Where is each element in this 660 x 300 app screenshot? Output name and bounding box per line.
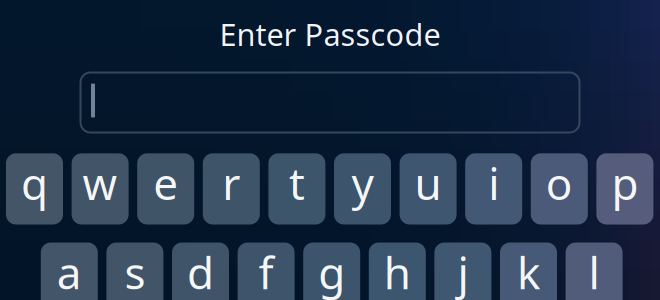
button[interactable]: r (203, 153, 260, 224)
button[interactable]: o (531, 153, 588, 224)
staticText: a (57, 243, 82, 300)
button[interactable]: a (41, 242, 98, 300)
staticText: l (589, 243, 600, 300)
staticText: w (83, 154, 118, 212)
button[interactable]: s (106, 242, 163, 300)
button[interactable]: h (369, 242, 426, 300)
button[interactable]: w (72, 153, 129, 224)
staticText: y (351, 154, 373, 212)
button[interactable]: t (268, 153, 325, 224)
staticText: o (546, 154, 573, 212)
button[interactable]: g (303, 242, 360, 300)
button[interactable]: p (596, 153, 653, 224)
staticText: j (457, 243, 468, 300)
staticText: g (318, 243, 345, 300)
staticText: d (187, 243, 214, 300)
button[interactable]: k (500, 242, 557, 300)
button[interactable]: j (434, 242, 491, 300)
button[interactable]: i (465, 153, 522, 224)
button[interactable]: q (6, 153, 63, 224)
staticText: r (222, 154, 240, 212)
staticText: e (153, 154, 178, 212)
button[interactable]: d (172, 242, 229, 300)
staticText: s (124, 243, 145, 300)
button[interactable]: y (334, 153, 391, 224)
staticText: p (611, 154, 638, 212)
staticText: f (259, 243, 274, 300)
button[interactable]: l (566, 242, 623, 300)
staticText: q (21, 154, 48, 212)
staticText: i (488, 154, 499, 212)
button[interactable]: Passcode (80, 72, 579, 132)
staticText: Enter Passcode (219, 14, 440, 54)
button[interactable]: f (238, 242, 295, 300)
button[interactable]: u (400, 153, 457, 224)
staticText: u (415, 154, 442, 212)
staticText: h (384, 243, 411, 300)
button[interactable]: e (137, 153, 194, 224)
staticText: k (517, 243, 540, 300)
staticText: t (289, 154, 305, 212)
